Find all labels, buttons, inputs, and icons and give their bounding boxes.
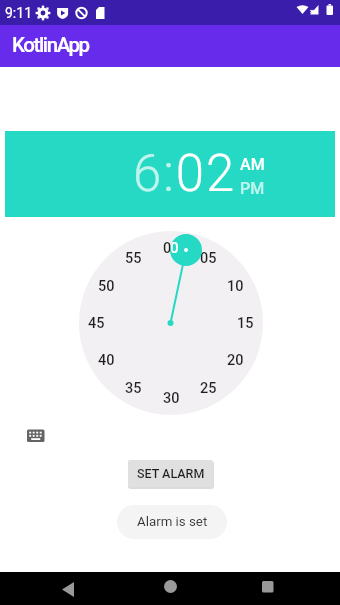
staticText: Alarm is set: [137, 514, 208, 530]
staticText: 10: [227, 278, 244, 295]
staticText: 45: [88, 315, 105, 332]
staticText: 55: [125, 250, 142, 267]
staticText: KotlinApp: [12, 33, 89, 57]
staticText: 50: [98, 278, 115, 295]
staticText: 6:02: [133, 144, 237, 204]
staticText: 00: [163, 240, 180, 257]
staticText: 20: [227, 352, 244, 369]
button[interactable]: [56, 576, 80, 600]
staticText: 05: [200, 250, 217, 267]
staticText: 00: [170, 240, 179, 257]
button[interactable]: AM: [240, 155, 265, 174]
button[interactable]: SET ALARM: [128, 460, 213, 487]
button[interactable]: PM: [240, 179, 265, 198]
staticText: 30: [163, 390, 180, 407]
staticText: 40: [98, 352, 115, 369]
button[interactable]: [158, 574, 183, 599]
staticText: 15: [237, 315, 254, 332]
button[interactable]: [22, 424, 50, 448]
staticText: SET ALARM: [137, 466, 205, 481]
staticText: 35: [125, 380, 142, 397]
staticText: 25: [200, 380, 217, 397]
staticText: 9:11: [5, 5, 32, 21]
button[interactable]: [256, 574, 280, 598]
